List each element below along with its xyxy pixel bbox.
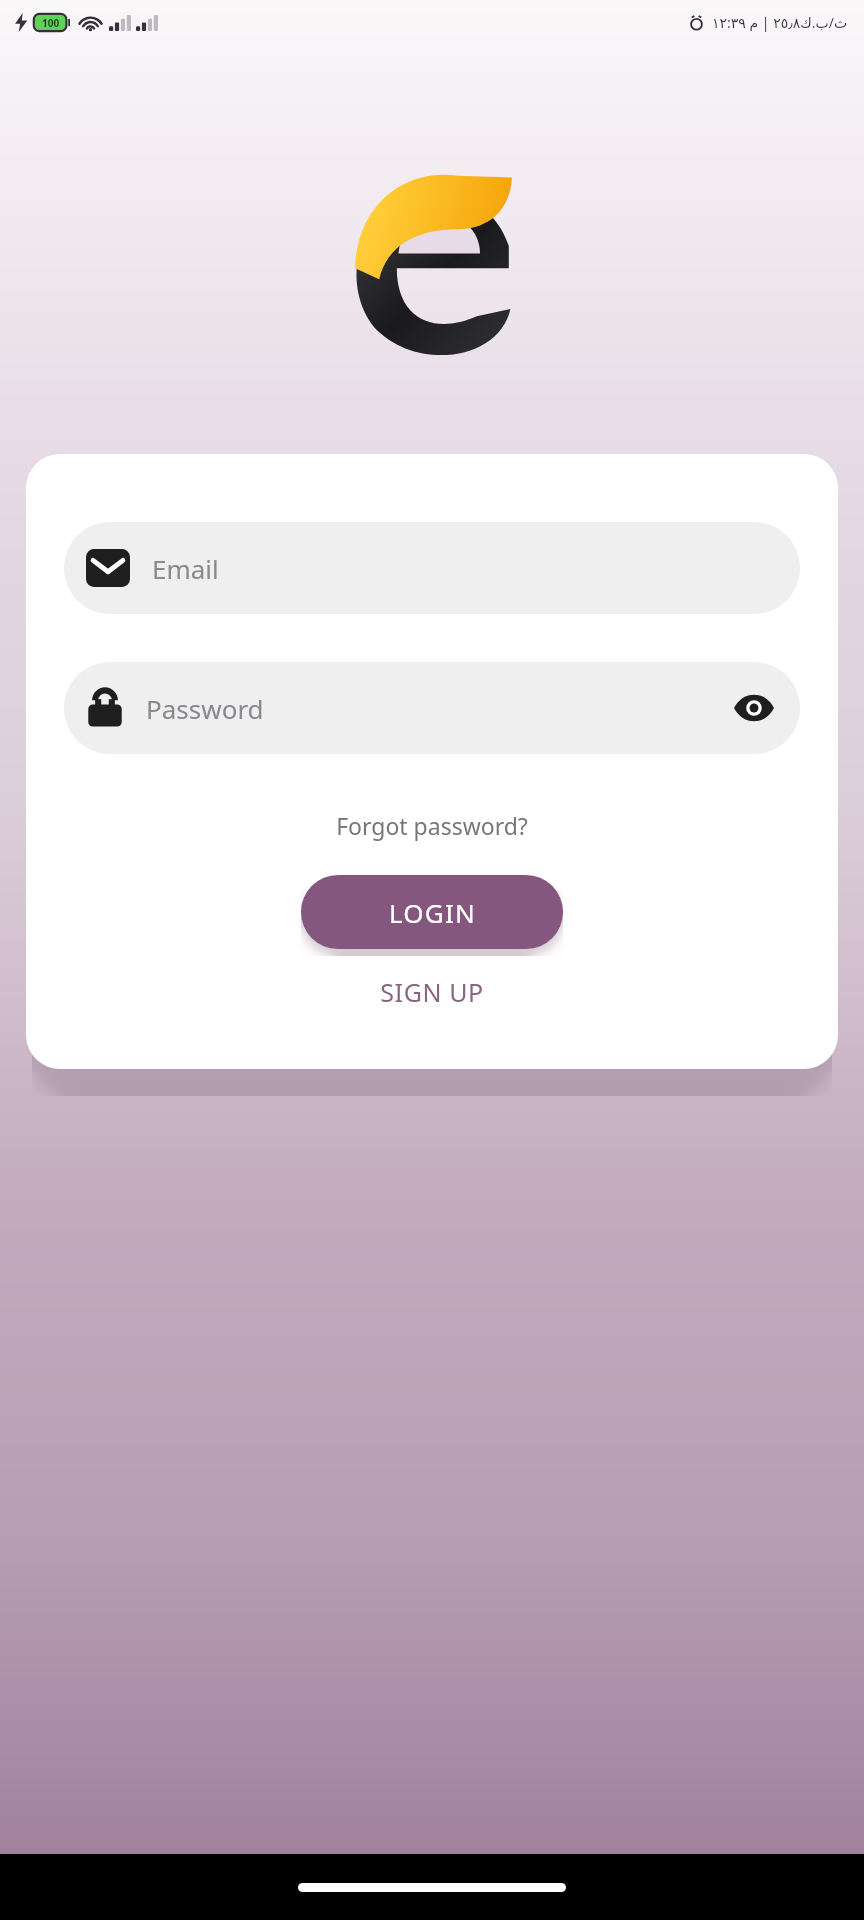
- staticText: ث/ب.ك٢٥٫٨ | م ١٢:٣٩: [712, 13, 848, 32]
- button[interactable]: Show password: [730, 684, 778, 732]
- staticText: Password: [146, 691, 730, 726]
- staticText: Email: [152, 551, 778, 586]
- button[interactable]: Password: [64, 662, 800, 754]
- button[interactable]: SIGN UP: [64, 971, 800, 1013]
- button[interactable]: LOGIN: [301, 875, 563, 949]
- staticText: LOGIN: [389, 895, 476, 930]
- staticText: 100: [42, 16, 60, 30]
- button[interactable]: Email: [64, 522, 800, 614]
- button[interactable]: Forgot password?: [64, 806, 800, 845]
